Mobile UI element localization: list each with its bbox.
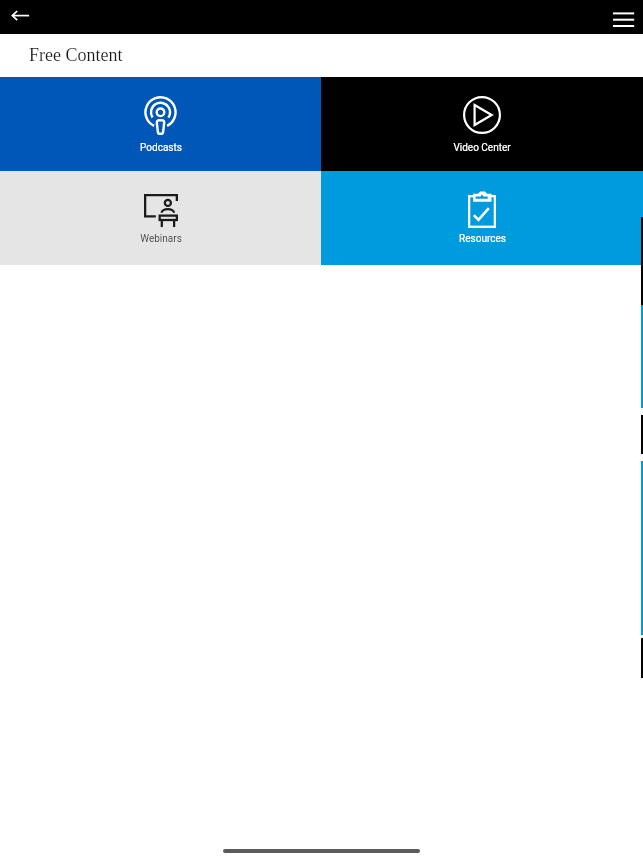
staticText: Podcasts	[140, 142, 182, 154]
staticText: Resources	[459, 233, 506, 245]
staticText: Free Content	[29, 45, 123, 65]
staticText: Webinars	[140, 233, 182, 245]
button[interactable]: Resources	[321, 171, 643, 265]
button[interactable]: Back	[0, 0, 44, 34]
button[interactable]: Podcasts	[0, 77, 321, 171]
button[interactable]: Menu	[599, 0, 643, 34]
staticText: Video Center	[453, 142, 511, 154]
button[interactable]: Video Center	[321, 77, 643, 171]
button[interactable]: Webinars	[0, 171, 321, 265]
